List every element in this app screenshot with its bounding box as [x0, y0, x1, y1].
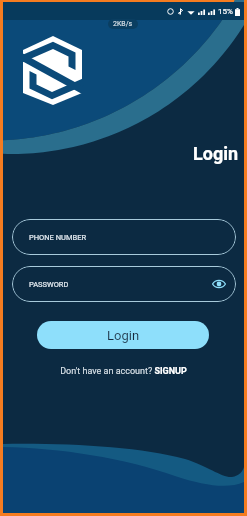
button[interactable]: PHONE NUMBER: [12, 219, 236, 255]
staticText: 15%: [218, 7, 233, 16]
button[interactable]: Don't have an account? SIGNUP: [3, 366, 244, 377]
button[interactable]: Login: [37, 321, 209, 349]
staticText: Don't have an account? SIGNUP: [60, 366, 187, 377]
button[interactable]: PASSWORD: [12, 266, 236, 302]
staticText: PASSWORD: [29, 280, 69, 289]
staticText: PHONE NUMBER: [29, 233, 87, 242]
staticText: Login: [193, 143, 239, 164]
staticText: 2KB/s: [113, 20, 133, 28]
staticText: Login: [107, 328, 140, 343]
button[interactable]: Show password: [212, 277, 226, 291]
